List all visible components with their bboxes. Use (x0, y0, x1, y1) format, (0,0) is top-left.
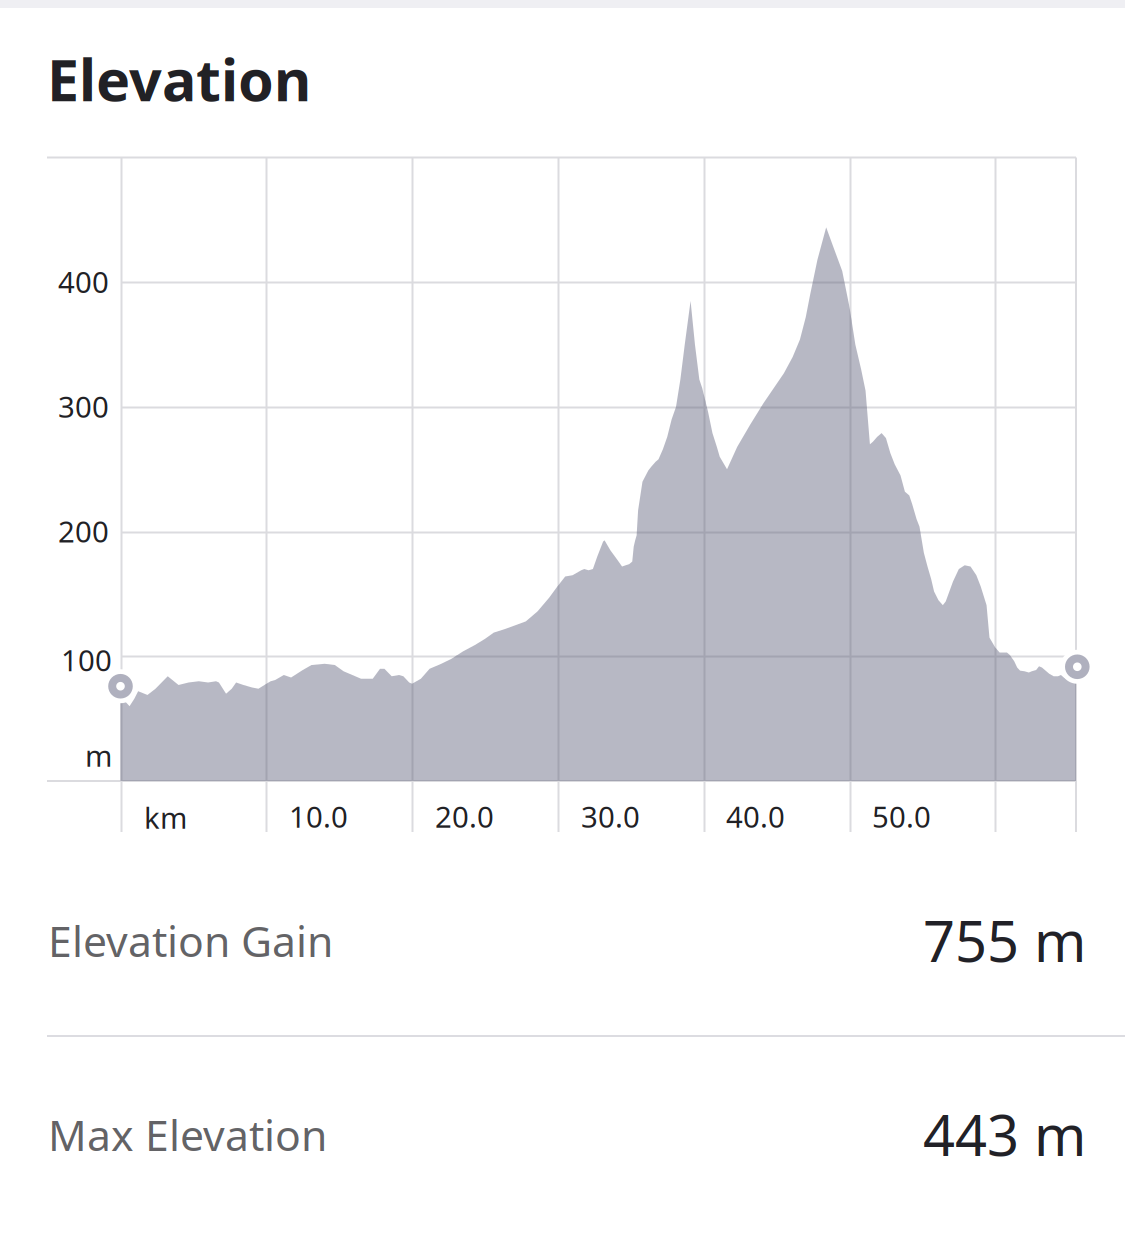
staticText: 40.0 (726, 797, 785, 836)
staticText: 20.0 (435, 797, 494, 836)
staticText: Elevation Gain (48, 912, 333, 969)
staticText: 50.0 (872, 797, 931, 836)
staticText: 100 (61, 640, 112, 679)
staticText: 755 m (923, 903, 1086, 977)
staticText: Max Elevation (48, 1106, 327, 1163)
staticText: Elevation (47, 41, 311, 117)
button[interactable]: Max Elevation (0, 1078, 1125, 1223)
button[interactable]: Elevation Gain (0, 891, 1125, 1036)
staticText: 400 (58, 262, 109, 301)
staticText: m (85, 736, 112, 775)
staticText: 443 m (923, 1097, 1086, 1171)
staticText: km (144, 798, 187, 837)
staticText: 200 (58, 512, 109, 551)
staticText: 30.0 (581, 797, 640, 836)
staticText: 10.0 (289, 797, 348, 836)
staticText: 300 (58, 387, 109, 426)
